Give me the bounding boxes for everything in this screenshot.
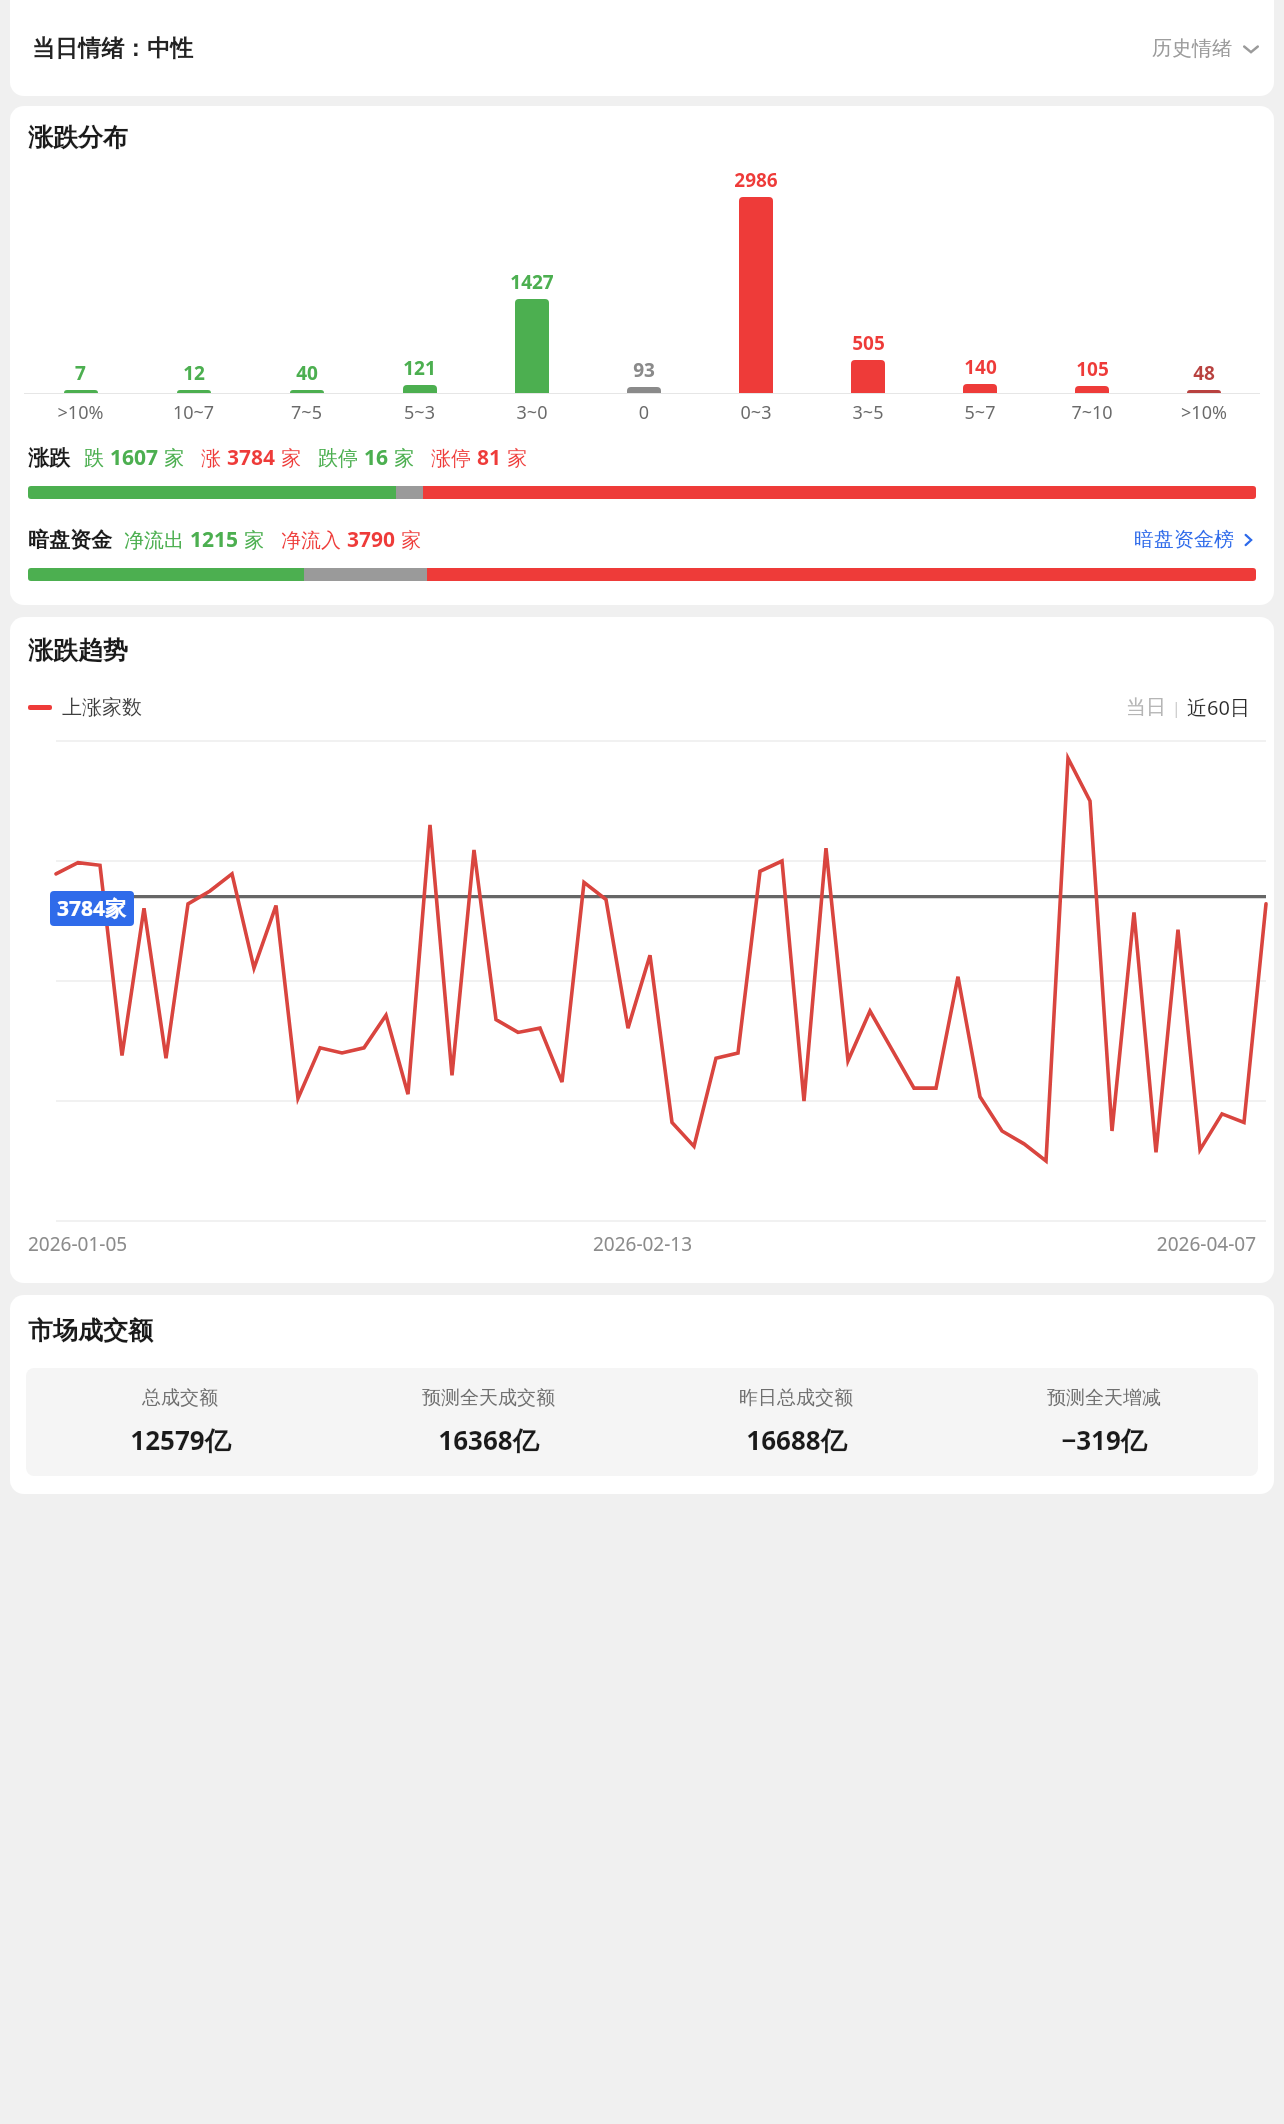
staticText: 涨跌 <box>28 445 70 471</box>
staticText: 0~3 <box>700 400 812 425</box>
staticText: 净流入 <box>281 526 347 553</box>
staticText: 40 <box>296 360 318 386</box>
other: 展开 <box>1242 40 1260 58</box>
staticText: 505 <box>852 330 885 356</box>
staticText: 16 <box>364 443 389 472</box>
staticText: 当日 <box>1126 695 1166 720</box>
button[interactable]: 暗盘资金 <box>10 525 1274 554</box>
staticText: 12 <box>183 360 205 386</box>
button[interactable]: 涨跌 <box>10 443 1274 472</box>
staticText: 10~7 <box>137 400 250 425</box>
staticText: 家 <box>239 526 265 553</box>
staticText: 家 <box>276 444 302 471</box>
staticText: 涨跌分布 <box>28 122 128 153</box>
staticText: 跌 <box>84 444 110 471</box>
staticText: −319亿 <box>1061 1422 1147 1458</box>
staticText: 48 <box>1193 360 1215 386</box>
staticText: 历史情绪 <box>1152 36 1232 61</box>
staticText: 当日情绪：中性 <box>32 34 193 63</box>
staticText: 5~7 <box>924 400 1036 425</box>
staticText: 3~0 <box>476 400 588 425</box>
staticText: | <box>1172 697 1181 719</box>
staticText: 近60日 <box>1187 694 1250 721</box>
staticText: 81 <box>477 443 502 472</box>
button[interactable]: 当日 <box>1120 689 1172 726</box>
staticText: 涨停 <box>431 444 477 471</box>
staticText: 1607 <box>110 443 159 472</box>
staticText: 家 <box>159 444 185 471</box>
staticText: 涨 <box>201 444 227 471</box>
staticText: 昨日总成交额 <box>739 1386 853 1410</box>
staticText: 2026-04-07 <box>847 1231 1256 1257</box>
staticText: 3784家 <box>57 894 127 923</box>
staticText: 7~5 <box>250 400 363 425</box>
staticText: 3784 <box>227 443 276 472</box>
staticText: >10% <box>1148 400 1260 425</box>
staticText: >10% <box>24 400 137 425</box>
staticText: 93 <box>633 357 655 383</box>
staticText: 105 <box>1076 356 1109 382</box>
staticText: 预测全天成交额 <box>422 1386 555 1410</box>
staticText: 暗盘资金 <box>28 527 112 553</box>
staticText: 16368亿 <box>438 1422 539 1458</box>
staticText: 2026-01-05 <box>28 1231 438 1257</box>
staticText: 3790 <box>347 525 396 554</box>
staticText: 净流出 <box>124 526 190 553</box>
staticText: 家 <box>389 444 415 471</box>
staticText: 0 <box>588 400 700 425</box>
staticText: 1215 <box>190 525 239 554</box>
staticText: 1427 <box>510 269 554 295</box>
staticText: 121 <box>403 355 436 381</box>
staticText: 上涨家数 <box>62 695 142 720</box>
button[interactable]: 历史情绪 <box>1138 28 1274 69</box>
staticText: 7~10 <box>1036 400 1148 425</box>
staticText: 7 <box>75 360 86 386</box>
staticText: 总成交额 <box>142 1386 218 1410</box>
staticText: 140 <box>964 354 997 380</box>
staticText: 家 <box>502 444 528 471</box>
staticText: 2986 <box>734 167 778 193</box>
staticText: 12579亿 <box>130 1422 231 1458</box>
staticText: 16688亿 <box>746 1422 847 1458</box>
button[interactable]: 近60日 <box>1181 688 1256 727</box>
staticText: 跌停 <box>318 444 364 471</box>
staticText: 家 <box>396 526 422 553</box>
staticText: 暗盘资金榜 <box>1134 527 1234 552</box>
staticText: 市场成交额 <box>28 1315 153 1346</box>
staticText: 3~5 <box>812 400 924 425</box>
staticText: 2026-02-13 <box>438 1231 847 1257</box>
staticText: 预测全天增减 <box>1047 1386 1161 1410</box>
staticText: 涨跌趋势 <box>28 635 128 666</box>
staticText: 5~3 <box>363 400 476 425</box>
